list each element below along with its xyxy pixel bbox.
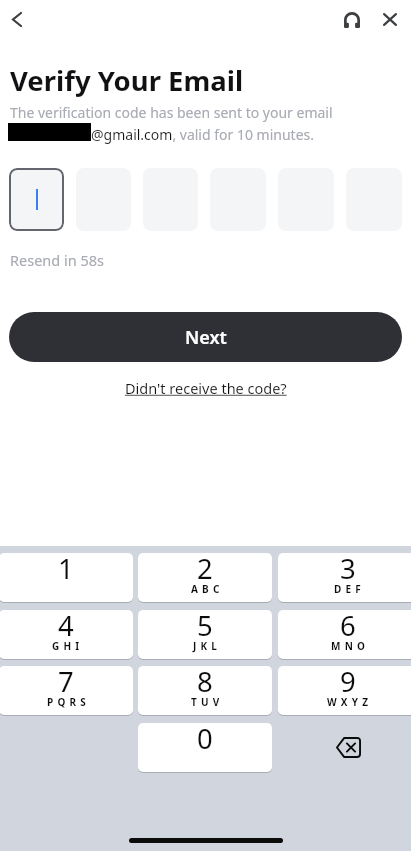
button[interactable]: Backspace bbox=[278, 723, 411, 772]
staticText: DEF bbox=[334, 582, 366, 596]
button[interactable]: 0 bbox=[138, 723, 272, 772]
staticText: MNO bbox=[331, 639, 370, 653]
staticText: 8 bbox=[197, 666, 213, 700]
button[interactable]: 7 bbox=[0, 666, 133, 715]
button[interactable]: 8 bbox=[138, 666, 272, 715]
staticText: Resend in 58s bbox=[10, 250, 104, 270]
staticText: Verify Your Email bbox=[10, 62, 244, 99]
button[interactable]: 6 bbox=[278, 610, 411, 659]
staticText: TUV bbox=[191, 695, 224, 709]
button[interactable]: 4 bbox=[0, 610, 133, 659]
staticText: WXYZ bbox=[327, 695, 373, 709]
button[interactable]: 2 bbox=[138, 553, 272, 602]
staticText: 3 bbox=[340, 553, 356, 587]
button[interactable]: 1 bbox=[0, 553, 133, 602]
staticText: 0 bbox=[197, 723, 213, 757]
staticText: ABC bbox=[191, 582, 224, 596]
staticText: 1 bbox=[58, 553, 74, 587]
staticText: JKL bbox=[193, 639, 222, 653]
staticText: PQRS bbox=[47, 695, 90, 709]
staticText: 4 bbox=[58, 610, 74, 644]
button[interactable]: 9 bbox=[278, 666, 411, 715]
staticText: 5 bbox=[197, 610, 213, 644]
button[interactable]: Back bbox=[0, 0, 37, 39]
button[interactable]: Next bbox=[9, 312, 402, 362]
button[interactable]: Customer support bbox=[332, 0, 372, 40]
staticText: GHI bbox=[52, 639, 84, 653]
staticText: 7 bbox=[58, 666, 74, 700]
staticText: The verification code has been sent to y… bbox=[10, 103, 333, 122]
button[interactable] bbox=[9, 168, 64, 231]
staticText: Next bbox=[185, 325, 227, 350]
button[interactable]: 5 bbox=[138, 610, 272, 659]
button[interactable]: Close bbox=[370, 0, 410, 39]
button[interactable]: 3 bbox=[278, 553, 411, 602]
button[interactable]: Didn't receive the code? bbox=[123, 376, 289, 400]
staticText: 9 bbox=[340, 666, 356, 700]
staticText: @gmail.com, valid for 10 minutes. bbox=[91, 125, 315, 144]
staticText: 6 bbox=[340, 610, 356, 644]
staticText: 2 bbox=[197, 553, 213, 587]
